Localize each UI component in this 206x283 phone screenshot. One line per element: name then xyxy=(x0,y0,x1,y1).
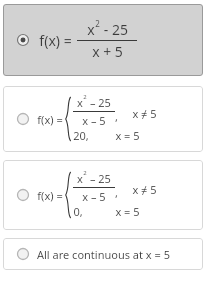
staticText: x = 5 xyxy=(115,128,140,143)
button[interactable]: Option 3 xyxy=(3,160,203,230)
button[interactable]: Option 4 xyxy=(3,238,203,270)
staticText: 2 xyxy=(95,18,100,29)
other: Option 3 xyxy=(17,189,29,201)
staticText: , xyxy=(115,109,118,124)
button[interactable]: Selected option xyxy=(3,4,203,76)
staticText: - 25 xyxy=(100,20,128,39)
staticText: , xyxy=(115,185,118,200)
staticText: – 25 xyxy=(87,95,111,110)
staticText: x – 5 xyxy=(82,189,106,204)
button[interactable]: Option 2 xyxy=(3,86,203,152)
staticText: All are continuous at x = 5 xyxy=(37,247,170,262)
staticText: f(x) = xyxy=(37,112,63,127)
staticText: x xyxy=(77,95,83,110)
staticText: x – 5 xyxy=(82,113,106,128)
other: Option 2 xyxy=(17,113,29,125)
staticText: x xyxy=(87,20,95,39)
staticText: x ≠ 5 xyxy=(132,106,157,121)
staticText: 2 xyxy=(83,169,87,177)
staticText: – 25 xyxy=(87,171,111,186)
staticText: x xyxy=(77,171,83,186)
other: Selected option xyxy=(17,34,29,46)
staticText: 0, xyxy=(73,204,83,219)
staticText: 20, xyxy=(73,128,89,143)
staticText: x + 5 xyxy=(92,42,123,61)
staticText: 2 xyxy=(83,93,87,101)
other: Option 4 xyxy=(17,248,29,260)
staticText: f(x) = xyxy=(37,188,63,203)
staticText: x ≠ 5 xyxy=(132,182,157,197)
staticText: f(x) = xyxy=(39,31,72,50)
staticText: x = 5 xyxy=(115,204,140,219)
